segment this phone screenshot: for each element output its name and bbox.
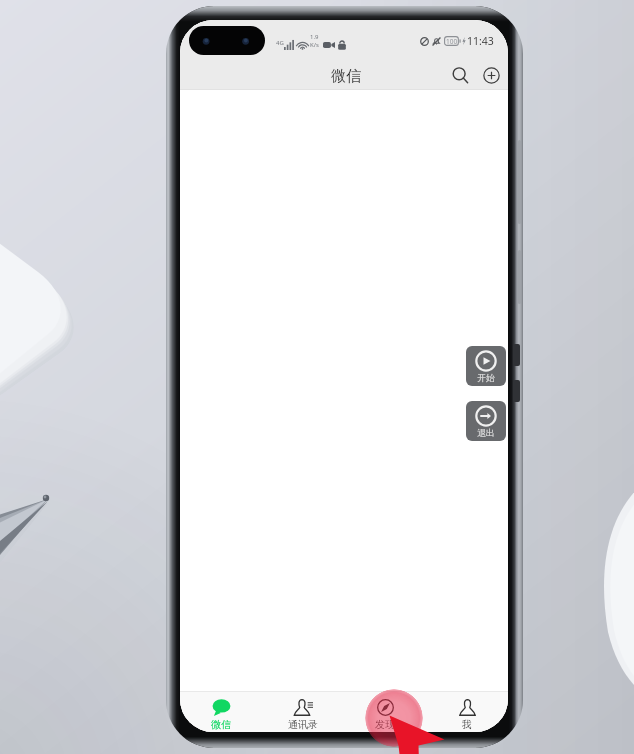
staticText: 我 <box>462 718 472 731</box>
button[interactable]: Add <box>478 62 504 88</box>
staticText: K/s <box>310 41 319 49</box>
button[interactable]: Exit <box>466 401 506 441</box>
button[interactable]: 发现 <box>344 691 426 732</box>
staticText: 1.9 <box>310 33 319 41</box>
staticText: 11:43 <box>467 34 494 48</box>
staticText: 微信 <box>211 718 231 731</box>
button[interactable]: Start <box>466 346 506 386</box>
staticText: 100 <box>446 37 458 46</box>
button[interactable]: Search <box>447 62 473 88</box>
staticText: 微信 <box>331 67 361 86</box>
button[interactable]: 微信 <box>180 691 262 732</box>
staticText: 发现 <box>375 718 395 731</box>
button[interactable]: 我 <box>426 691 508 732</box>
staticText: 开始 <box>477 372 495 383</box>
staticText: 通讯录 <box>288 718 318 731</box>
staticText: 退出 <box>477 427 495 438</box>
button[interactable]: 通讯录 <box>262 691 344 732</box>
staticText: 4G <box>276 39 284 47</box>
